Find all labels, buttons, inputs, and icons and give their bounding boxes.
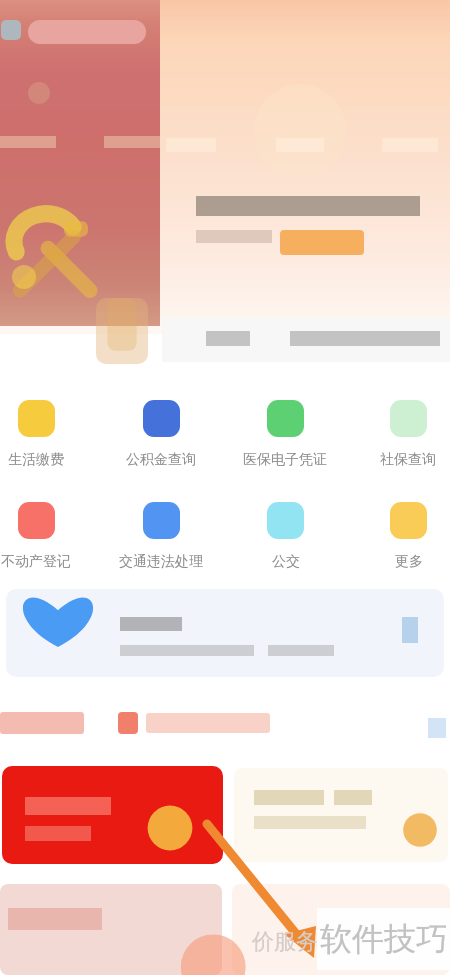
staticText: 价服务 bbox=[252, 928, 318, 956]
staticText: 公积金查询 bbox=[126, 451, 196, 469]
button[interactable] bbox=[0, 712, 84, 734]
button[interactable]: Profile bbox=[1, 20, 21, 40]
button[interactable]: Search bbox=[28, 20, 146, 44]
button[interactable] bbox=[234, 768, 448, 862]
staticText: 社保查询 bbox=[380, 451, 436, 469]
button[interactable] bbox=[162, 318, 450, 362]
button[interactable] bbox=[280, 230, 364, 255]
staticText: 公交 bbox=[272, 553, 300, 571]
staticText: 不动产登记 bbox=[1, 553, 71, 571]
button[interactable]: 交通违法处理 bbox=[103, 502, 219, 588]
button[interactable] bbox=[232, 884, 450, 975]
staticText: 生活缴费 bbox=[8, 451, 64, 469]
button[interactable]: 医保电子凭证 bbox=[227, 400, 343, 486]
button[interactable] bbox=[6, 589, 444, 677]
staticText: 软件技巧 bbox=[320, 919, 448, 959]
staticText: 医保电子凭证 bbox=[243, 451, 327, 469]
button[interactable] bbox=[0, 884, 222, 975]
staticText: 交通违法处理 bbox=[119, 553, 203, 571]
button[interactable]: 更多 bbox=[350, 502, 450, 588]
button[interactable]: 社保查询 bbox=[350, 400, 450, 486]
button[interactable]: 公积金查询 bbox=[103, 400, 219, 486]
button[interactable]: 生活缴费 bbox=[0, 400, 94, 486]
button[interactable]: 不动产登记 bbox=[0, 502, 94, 588]
staticText: 更多 bbox=[395, 553, 423, 571]
button[interactable] bbox=[2, 766, 223, 864]
button[interactable]: 公交 bbox=[227, 502, 343, 588]
